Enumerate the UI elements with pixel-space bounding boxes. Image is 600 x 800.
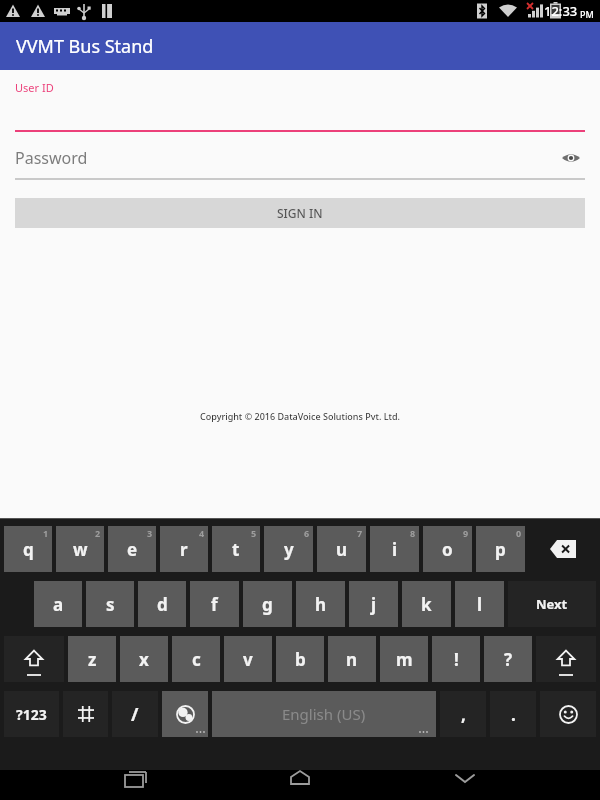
- staticText: 4: [199, 527, 205, 539]
- button[interactable]: z: [68, 636, 116, 682]
- staticText: c: [192, 648, 201, 671]
- button[interactable]: Home: [270, 770, 330, 800]
- staticText: .: [511, 703, 516, 726]
- staticText: User ID: [15, 80, 54, 95]
- button[interactable]: g: [243, 581, 292, 627]
- button[interactable]: f: [190, 581, 239, 627]
- staticText: d: [157, 593, 168, 616]
- staticText: q: [23, 538, 34, 561]
- staticText: 3: [147, 527, 153, 539]
- staticText: 12:33: [544, 2, 578, 20]
- staticText: ,: [461, 703, 466, 726]
- button[interactable]: Backspace: [529, 526, 596, 572]
- staticText: !: [454, 648, 459, 671]
- button[interactable]: u: [317, 526, 366, 572]
- button[interactable]: .: [490, 691, 536, 737]
- button[interactable]: s: [86, 581, 134, 627]
- staticText: j: [371, 593, 377, 616]
- staticText: x: [139, 648, 149, 671]
- staticText: SIGN IN: [277, 205, 323, 221]
- button[interactable]: l: [455, 581, 504, 627]
- button[interactable]: v: [224, 636, 272, 682]
- staticText: 5: [251, 527, 257, 539]
- staticText: t: [232, 538, 240, 561]
- staticText: 0: [516, 527, 522, 539]
- button[interactable]: o: [423, 526, 472, 572]
- button[interactable]: Change language: [162, 691, 208, 737]
- staticText: n: [346, 648, 358, 671]
- staticText: PM: [580, 8, 594, 20]
- button[interactable]: r: [160, 526, 208, 572]
- staticText: English (US): [282, 704, 366, 724]
- staticText: 8: [410, 527, 416, 539]
- staticText: Password: [15, 147, 88, 169]
- staticText: p: [495, 538, 506, 561]
- staticText: y: [284, 538, 294, 561]
- button[interactable]: ,: [440, 691, 486, 737]
- staticText: z: [88, 648, 97, 671]
- button[interactable]: Hide keyboard: [435, 770, 495, 800]
- button[interactable]: !: [432, 636, 480, 682]
- button[interactable]: Password: [15, 142, 585, 180]
- staticText: h: [315, 593, 327, 616]
- button[interactable]: h: [296, 581, 345, 627]
- button[interactable]: c: [172, 636, 220, 682]
- button[interactable]: Next: [508, 581, 596, 627]
- staticText: VVMT Bus Stand: [16, 34, 154, 59]
- staticText: 2: [95, 527, 101, 539]
- button[interactable]: b: [276, 636, 324, 682]
- button[interactable]: SIGN IN: [15, 198, 585, 228]
- button[interactable]: ?: [484, 636, 532, 682]
- staticText: r: [180, 538, 188, 561]
- staticText: 6: [304, 527, 310, 539]
- button[interactable]: a: [34, 581, 82, 627]
- button[interactable]: Input settings: [63, 691, 108, 737]
- staticText: i: [392, 538, 398, 561]
- button[interactable]: x: [120, 636, 168, 682]
- staticText: f: [211, 593, 218, 616]
- button[interactable]: Shift: [536, 636, 596, 682]
- staticText: Copyright © 2016 DataVoice Solutions Pvt…: [0, 410, 600, 422]
- button[interactable]: y: [264, 526, 313, 572]
- staticText: l: [477, 593, 483, 616]
- staticText: b: [295, 648, 306, 671]
- button[interactable]: e: [108, 526, 156, 572]
- staticText: /: [131, 702, 139, 727]
- staticText: 7: [357, 527, 363, 539]
- staticText: Next: [536, 595, 568, 613]
- button[interactable]: k: [402, 581, 451, 627]
- button[interactable]: ?123: [4, 691, 59, 737]
- staticText: o: [442, 538, 453, 561]
- button[interactable]: m: [380, 636, 428, 682]
- button[interactable]: q: [4, 526, 52, 572]
- button[interactable]: t: [212, 526, 260, 572]
- button[interactable]: Show password: [557, 144, 585, 172]
- button[interactable]: d: [138, 581, 186, 627]
- button[interactable]: Emoji: [540, 691, 596, 737]
- button[interactable]: w: [56, 526, 104, 572]
- button[interactable]: Shift: [4, 636, 64, 682]
- button[interactable]: /: [112, 691, 158, 737]
- button[interactable]: i: [370, 526, 419, 572]
- button[interactable]: User ID: [15, 80, 585, 132]
- staticText: u: [336, 538, 348, 561]
- staticText: 9: [463, 527, 469, 539]
- staticText: w: [73, 538, 88, 561]
- button[interactable]: p: [476, 526, 525, 572]
- button[interactable]: n: [328, 636, 376, 682]
- staticText: v: [243, 648, 253, 671]
- staticText: m: [396, 648, 413, 671]
- staticText: s: [106, 593, 115, 616]
- staticText: e: [127, 538, 138, 561]
- button[interactable]: English (US): [212, 691, 436, 737]
- button[interactable]: j: [349, 581, 398, 627]
- button[interactable]: Recent apps: [105, 770, 165, 800]
- staticText: g: [262, 593, 273, 616]
- staticText: a: [53, 593, 64, 616]
- staticText: k: [421, 593, 432, 616]
- staticText: ?: [504, 648, 513, 671]
- staticText: ?123: [16, 705, 47, 724]
- staticText: 1: [43, 527, 49, 539]
